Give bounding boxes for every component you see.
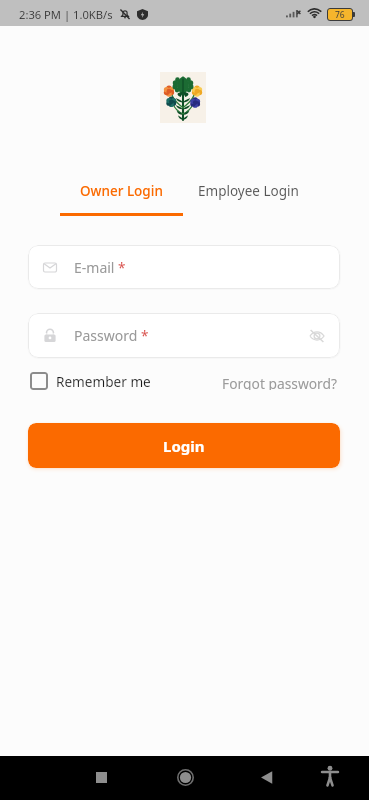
staticText: Login (163, 436, 205, 456)
staticText: Remember me (56, 372, 151, 391)
button[interactable]: Employee Login (184, 172, 369, 216)
staticText: Owner Login (80, 182, 163, 200)
button[interactable]: Login (28, 423, 340, 468)
button[interactable]: Password (28, 313, 340, 358)
button[interactable]: Owner Login (0, 172, 184, 216)
button[interactable]: E-mail (28, 245, 340, 289)
staticText: * (118, 259, 126, 277)
button[interactable]: Recents (83, 759, 119, 795)
staticText: Password (74, 326, 138, 345)
button[interactable]: Accessibility (312, 758, 348, 794)
staticText: 2:36 PM | 1.0KB/s (19, 7, 113, 22)
button[interactable]: Show password (306, 325, 328, 347)
button[interactable]: Home (167, 759, 203, 795)
staticText: Forgot password? (222, 374, 337, 390)
button[interactable]: Back (248, 759, 284, 795)
staticText: Employee Login (198, 182, 299, 200)
staticText: E-mail (74, 258, 115, 277)
button[interactable]: Remember me (25, 370, 156, 392)
button[interactable]: Forgot password? (218, 371, 341, 393)
staticText: 76 (335, 9, 345, 20)
staticText: * (141, 327, 149, 345)
